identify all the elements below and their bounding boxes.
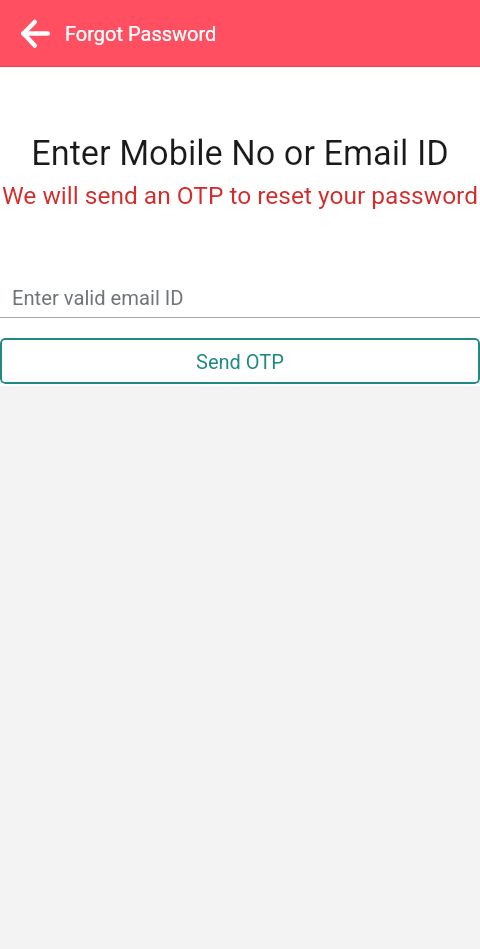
staticText: Enter valid email ID <box>12 286 184 310</box>
button[interactable]: Enter valid email ID <box>0 272 480 319</box>
button[interactable]: Back <box>13 11 57 55</box>
staticText: We will send an OTP to reset your passwo… <box>0 181 480 210</box>
button[interactable]: Send OTP <box>0 338 480 384</box>
staticText: Send OTP <box>196 350 284 373</box>
staticText: Forgot Password <box>65 22 217 45</box>
staticText: Enter Mobile No or Email ID <box>0 133 480 173</box>
